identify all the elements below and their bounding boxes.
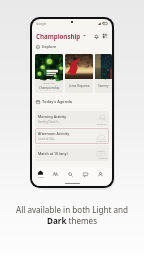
button[interactable]: Home xyxy=(34,168,47,180)
staticText: Afternoon Activity xyxy=(38,131,70,136)
button[interactable]: Scan code xyxy=(101,32,109,40)
staticText: 8:30 AM xyxy=(97,122,107,125)
button[interactable]: Afternoon Activity xyxy=(35,128,109,144)
staticText: Match at 10 (any) xyxy=(38,151,68,156)
staticText: Starting Check In xyxy=(38,120,59,124)
button[interactable]: Match at 10 (any) xyxy=(35,145,109,161)
staticText: Home xyxy=(38,176,44,179)
button[interactable]: Notifications xyxy=(92,32,100,40)
button[interactable]: Messages xyxy=(79,168,92,180)
staticText: All available in both Light and Dark the… xyxy=(9,204,135,226)
button[interactable]: Joma Biquama xyxy=(65,54,93,93)
button[interactable]: Tennis Club xyxy=(35,54,63,93)
staticText: 12:30 PM xyxy=(96,139,107,142)
button[interactable]: Profile xyxy=(94,168,107,180)
staticText: Explore xyxy=(42,44,57,49)
staticText: Lunch at Tabs xyxy=(38,137,55,141)
staticText: Joma Biquama xyxy=(69,84,90,88)
button[interactable]: Morning Activity xyxy=(35,111,109,127)
button[interactable]: Sammy xyxy=(95,54,112,93)
staticText: Championship xyxy=(36,32,81,40)
staticText: 3:00 PM xyxy=(98,156,107,159)
button[interactable]: Teams xyxy=(49,168,62,180)
staticText: Sammy xyxy=(98,84,109,88)
staticText: Tennis Club xyxy=(43,82,55,85)
staticText: Google xyxy=(36,22,47,26)
staticText: Championship xyxy=(39,86,60,90)
staticText: Today's Agenda xyxy=(42,99,72,104)
staticText: Morning Activity xyxy=(38,114,67,119)
button[interactable]: Search xyxy=(64,168,77,180)
